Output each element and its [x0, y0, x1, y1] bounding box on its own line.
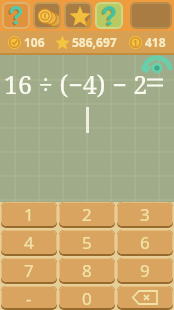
button[interactable]: 3 [118, 203, 172, 226]
button[interactable]: 6 [118, 231, 172, 254]
staticText: 8 [82, 259, 92, 282]
staticText: 106 [24, 34, 45, 50]
button[interactable]: 4 [2, 231, 56, 254]
staticText: 6 [140, 231, 150, 254]
staticText: 16 ÷ (−4) − 2 [4, 67, 148, 101]
button[interactable] [97, 4, 121, 27]
button[interactable]: 2 [60, 203, 114, 226]
staticText: 4 [24, 231, 34, 254]
staticText: 9 [140, 259, 150, 282]
button[interactable]: 7 [2, 259, 56, 282]
button[interactable] [118, 287, 172, 308]
button[interactable] [4, 4, 28, 27]
button[interactable]: 5 [60, 231, 114, 254]
button[interactable]: 0 [60, 287, 114, 308]
button[interactable] [35, 4, 59, 27]
staticText: 1 [133, 37, 138, 48]
staticText: 3 [140, 203, 150, 226]
staticText: 2 [82, 203, 92, 226]
staticText: 418 [145, 34, 166, 50]
staticText: - [26, 287, 32, 308]
button[interactable] [140, 55, 172, 77]
button[interactable]: 9 [118, 259, 172, 282]
button[interactable] [66, 4, 90, 27]
staticText: 0 [82, 287, 92, 308]
staticText: 1 [24, 203, 34, 226]
button[interactable]: 8 [60, 259, 114, 282]
staticText: 7 [24, 259, 34, 282]
staticText: 5 [82, 231, 92, 254]
staticText: 586,697 [72, 34, 117, 50]
button[interactable]: 1 [2, 203, 56, 226]
button[interactable]: - [2, 287, 56, 308]
